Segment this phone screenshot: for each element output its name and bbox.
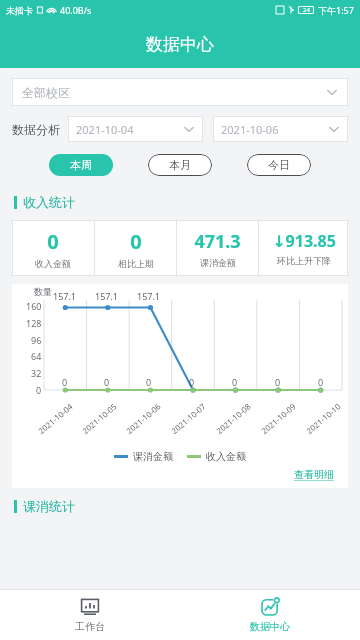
button[interactable]: 本月 bbox=[148, 154, 212, 176]
staticText: 收入金额 bbox=[206, 450, 246, 463]
staticText: 收入金额 bbox=[35, 258, 71, 269]
staticText: 0 bbox=[275, 376, 281, 388]
button[interactable]: 今日 bbox=[247, 154, 311, 176]
staticText: 下午1:57 bbox=[318, 4, 354, 16]
staticText: 160 bbox=[26, 300, 42, 312]
staticText: 环比上升下降 bbox=[277, 255, 331, 266]
staticText: 0 bbox=[146, 376, 152, 388]
other: 数据中心 bbox=[260, 597, 280, 617]
staticText: 0 bbox=[130, 228, 142, 255]
staticText: 今日 bbox=[268, 158, 290, 172]
staticText: 本周 bbox=[70, 158, 92, 172]
staticText: 157.1 bbox=[95, 290, 119, 302]
staticText: 全部校区 bbox=[22, 85, 70, 100]
staticText: 0 bbox=[47, 228, 59, 255]
staticText: 24 bbox=[303, 6, 310, 14]
staticText: 2021-10-06 bbox=[124, 401, 163, 436]
staticText: 数据分析 bbox=[12, 122, 60, 137]
staticText: 未插卡 bbox=[6, 5, 33, 16]
staticText: 96 bbox=[31, 334, 42, 346]
staticText: 2021-10-08 bbox=[214, 401, 253, 436]
staticText: 40.0B/s bbox=[60, 4, 92, 16]
staticText: 本月 bbox=[169, 158, 191, 172]
staticText: 471.3 bbox=[194, 229, 241, 254]
staticText: 0 bbox=[104, 376, 110, 388]
staticText: 数量 bbox=[34, 286, 52, 297]
button[interactable]: 2021-10-04 bbox=[68, 116, 203, 142]
staticText: 0 bbox=[318, 376, 324, 388]
staticText: 课消金额 bbox=[133, 450, 173, 463]
button[interactable]: 2021-10-06 bbox=[213, 116, 348, 142]
staticText: 工作台 bbox=[75, 620, 105, 633]
staticText: 数据中心 bbox=[250, 620, 290, 633]
staticText: 2021-10-04 bbox=[76, 122, 134, 137]
staticText: 32 bbox=[31, 367, 42, 379]
staticText: 0 bbox=[36, 384, 42, 396]
staticText: 2021-10-05 bbox=[80, 401, 119, 436]
staticText: 0 bbox=[62, 376, 68, 388]
staticText: 相比上期 bbox=[118, 258, 154, 269]
staticText: 128 bbox=[26, 317, 42, 329]
staticText: 查看明细 bbox=[294, 468, 334, 481]
staticText: 157.1 bbox=[53, 290, 77, 302]
staticText: 2021-10-04 bbox=[36, 401, 75, 436]
staticText: 2021-10-09 bbox=[259, 401, 298, 436]
staticText: 2021-10-10 bbox=[304, 401, 343, 436]
button[interactable]: 数据中心 bbox=[180, 590, 360, 640]
staticText: 2021-10-06 bbox=[221, 122, 279, 137]
staticText: 2021-10-07 bbox=[169, 401, 208, 436]
staticText: 课消金额 bbox=[200, 257, 236, 268]
staticText: 64 bbox=[31, 350, 42, 362]
staticText: 0 bbox=[232, 376, 238, 388]
button[interactable]: 工作台 bbox=[0, 590, 180, 640]
button[interactable]: 本周 bbox=[49, 154, 113, 176]
staticText: 157.1 bbox=[137, 290, 161, 302]
staticText: 收入统计 bbox=[23, 194, 75, 210]
staticText: ↓913.85 bbox=[272, 230, 336, 252]
other: 工作台 bbox=[80, 597, 100, 617]
button[interactable]: 查看明细 bbox=[280, 463, 348, 486]
staticText: 课消统计 bbox=[23, 498, 75, 514]
button[interactable]: 全部校区 bbox=[12, 78, 348, 106]
staticText: 数据中心 bbox=[146, 34, 214, 55]
staticText: 0 bbox=[189, 376, 195, 388]
